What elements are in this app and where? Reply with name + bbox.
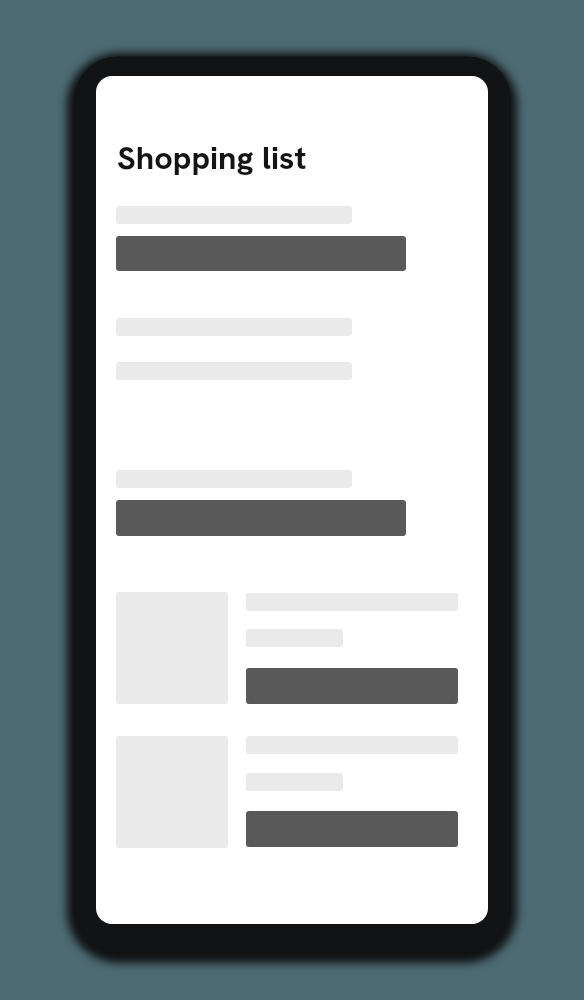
- button[interactable]: Add to list: [246, 668, 458, 704]
- staticText: Shopping list: [117, 136, 307, 178]
- button[interactable]: Add item: [116, 236, 406, 271]
- button[interactable]: Add item: [116, 500, 406, 536]
- button[interactable]: Add to list: [246, 811, 458, 847]
